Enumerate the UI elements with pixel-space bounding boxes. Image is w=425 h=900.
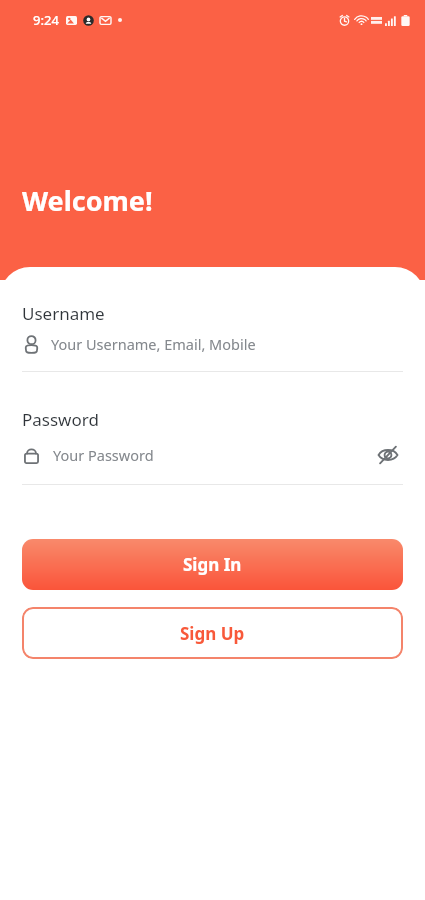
staticText: Your Password: [53, 445, 154, 465]
staticText: Welcome!: [22, 182, 153, 219]
staticText: Username: [22, 302, 105, 325]
button[interactable]: Password: [0, 408, 425, 470]
staticText: Sign Up: [180, 622, 245, 645]
staticText: Sign In: [183, 553, 242, 576]
staticText: 9:24: [33, 11, 59, 29]
staticText: Password: [22, 408, 99, 431]
button[interactable]: Username: [0, 302, 425, 354]
staticText: Your Username, Email, Mobile: [51, 334, 256, 354]
button[interactable]: Show password: [373, 440, 403, 470]
button[interactable]: Sign In: [22, 539, 403, 590]
button[interactable]: Sign Up: [22, 607, 403, 659]
